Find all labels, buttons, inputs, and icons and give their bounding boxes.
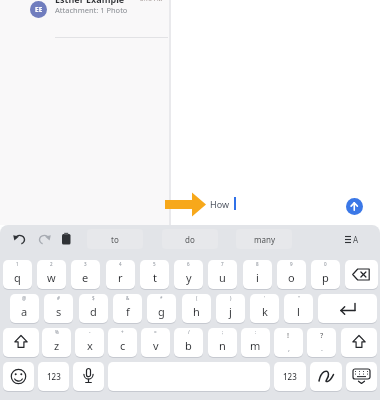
button[interactable]: 123 xyxy=(274,362,306,391)
button[interactable]: 8 xyxy=(243,260,272,289)
staticText: w xyxy=(47,270,56,285)
staticText: q xyxy=(14,270,21,285)
button[interactable]: 123 xyxy=(38,362,69,391)
button[interactable]: $ xyxy=(79,294,108,323)
staticText: : xyxy=(255,329,257,335)
staticText: + xyxy=(121,329,124,335)
button[interactable]: @ xyxy=(10,294,39,323)
staticText: ) xyxy=(230,295,232,301)
staticText: $ xyxy=(92,295,95,301)
staticText: u xyxy=(219,270,226,285)
button[interactable]: ! xyxy=(274,328,303,357)
staticText: ; xyxy=(222,329,224,335)
staticText: l xyxy=(297,304,300,319)
staticText: z xyxy=(54,338,60,353)
staticText: 3 xyxy=(84,261,87,267)
staticText: 3:13 PM xyxy=(140,0,163,3)
staticText: . xyxy=(321,344,323,354)
staticText: 4 xyxy=(119,261,122,267)
staticText: d xyxy=(90,304,97,319)
staticText: = xyxy=(154,329,157,335)
staticText: 5 xyxy=(153,261,156,267)
button[interactable]: do xyxy=(162,229,218,249)
button[interactable]: 7 xyxy=(208,260,237,289)
button[interactable]: many xyxy=(236,229,292,249)
staticText: x xyxy=(87,338,93,353)
button[interactable]: ( xyxy=(182,294,211,323)
staticText: h xyxy=(193,304,200,319)
staticText: " xyxy=(298,295,300,301)
button[interactable]: = xyxy=(141,328,170,357)
button[interactable]: 2 xyxy=(37,260,66,289)
staticText: b xyxy=(185,338,192,353)
button[interactable] xyxy=(346,362,377,391)
button[interactable]: 0 xyxy=(311,260,340,289)
button[interactable] xyxy=(3,328,39,357)
button[interactable]: to xyxy=(87,229,143,249)
staticText: EE xyxy=(35,5,43,14)
button[interactable]: 6 xyxy=(174,260,203,289)
staticText: ( xyxy=(196,295,198,301)
button[interactable]: ? xyxy=(307,328,336,357)
button[interactable] xyxy=(310,362,342,391)
button[interactable] xyxy=(345,260,378,289)
staticText: & xyxy=(126,295,130,301)
staticText: 2 xyxy=(50,261,53,267)
staticText: @ xyxy=(22,295,27,301)
button[interactable]: 1 xyxy=(3,260,32,289)
staticText: 9 xyxy=(290,261,293,267)
button[interactable] xyxy=(73,362,104,391)
staticText: 8 xyxy=(256,261,259,267)
button[interactable]: - xyxy=(75,328,104,357)
staticText: Esther Example xyxy=(55,0,125,5)
staticText: j xyxy=(229,304,232,319)
staticText: t xyxy=(153,270,157,285)
button[interactable]: # xyxy=(44,294,73,323)
button[interactable]: & xyxy=(113,294,142,323)
staticText: to xyxy=(111,234,119,245)
button[interactable]: : xyxy=(241,328,270,357)
staticText: i xyxy=(256,270,259,285)
button[interactable]: % xyxy=(42,328,71,357)
staticText: % xyxy=(55,329,59,335)
button[interactable]: 3 xyxy=(71,260,100,289)
staticText: v xyxy=(153,338,159,353)
button[interactable] xyxy=(346,198,363,215)
staticText: e xyxy=(82,270,89,285)
staticText: m xyxy=(250,338,261,353)
staticText: ' xyxy=(264,295,266,301)
button[interactable]: / xyxy=(174,328,203,357)
staticText: * xyxy=(160,295,163,301)
button[interactable] xyxy=(318,294,377,323)
button[interactable]: EE xyxy=(30,1,47,18)
button[interactable]: ) xyxy=(216,294,245,323)
button[interactable]: 4 xyxy=(106,260,135,289)
staticText: 0 xyxy=(324,261,327,267)
staticText: How xyxy=(210,198,230,210)
staticText: ? xyxy=(320,330,324,340)
button[interactable]: ' xyxy=(250,294,279,323)
button[interactable] xyxy=(341,328,377,357)
staticText: A xyxy=(353,234,359,245)
staticText: o xyxy=(288,270,295,285)
staticText: g xyxy=(158,304,165,319)
staticText: ! xyxy=(287,330,290,340)
button[interactable]: " xyxy=(284,294,313,323)
button[interactable] xyxy=(3,362,34,391)
staticText: - xyxy=(89,329,91,335)
staticText: many xyxy=(254,234,275,245)
staticText: r xyxy=(118,270,123,285)
button[interactable]: + xyxy=(108,328,137,357)
button[interactable]: ; xyxy=(208,328,237,357)
staticText: 123 xyxy=(283,371,297,382)
staticText: 6 xyxy=(187,261,190,267)
staticText: # xyxy=(57,295,60,301)
staticText: Attachment: 1 Photo xyxy=(55,5,128,15)
button[interactable]: 9 xyxy=(277,260,306,289)
staticText: n xyxy=(219,338,226,353)
button[interactable]: 5 xyxy=(140,260,169,289)
button[interactable]: * xyxy=(147,294,176,323)
staticText: 7 xyxy=(221,261,224,267)
staticText: 1 xyxy=(16,261,19,267)
